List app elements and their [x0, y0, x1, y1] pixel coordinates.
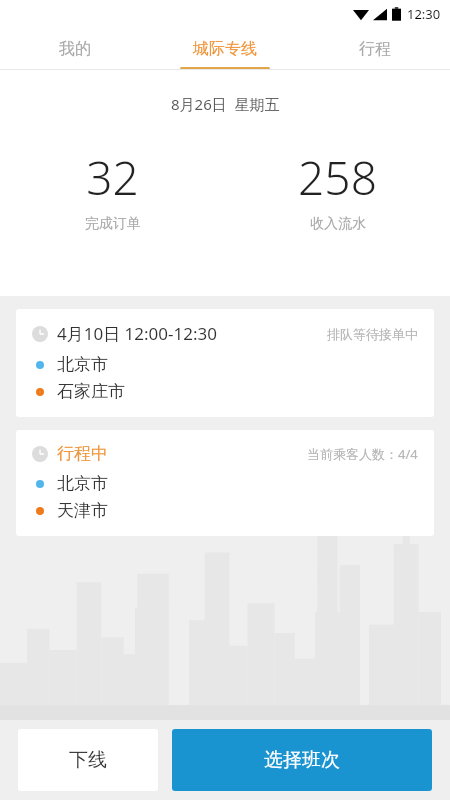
button[interactable]: 选择班次 [172, 729, 432, 791]
staticText: 12:30 [407, 5, 441, 23]
button[interactable]: 行程中 [16, 430, 434, 536]
button[interactable]: 行程 [300, 28, 450, 70]
button[interactable]: 我的 [0, 28, 150, 70]
staticText: 行程中 [57, 443, 108, 464]
staticText: 城际专线 [193, 39, 257, 59]
staticText: 北京市 [57, 354, 108, 375]
staticText: 行程 [359, 39, 391, 59]
button[interactable]: 城际专线 [150, 28, 300, 70]
staticText: 收入流水 [310, 215, 366, 233]
staticText: 32 [86, 146, 139, 209]
button[interactable]: 下线 [18, 729, 158, 791]
staticText: 天津市 [57, 500, 108, 521]
staticText: 当前乘客人数：4/4 [307, 445, 418, 463]
staticText: 完成订单 [85, 215, 141, 233]
staticText: 选择班次 [264, 748, 340, 772]
staticText: 石家庄市 [57, 381, 125, 402]
button[interactable]: 4月10日 12:00-12:30 [16, 309, 434, 417]
staticText: 排队等待接单中 [327, 326, 418, 342]
staticText: 北京市 [57, 473, 108, 494]
staticText: 4月10日 12:00-12:30 [57, 322, 217, 345]
staticText: 我的 [59, 39, 91, 59]
staticText: 258 [298, 146, 377, 209]
staticText: 8月26日 星期五 [171, 94, 280, 114]
staticText: 下线 [69, 748, 107, 772]
